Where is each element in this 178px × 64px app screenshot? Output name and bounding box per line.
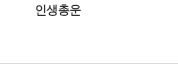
staticText: 인생총운	[35, 2, 81, 17]
button[interactable]: 인생총운	[0, 0, 178, 64]
